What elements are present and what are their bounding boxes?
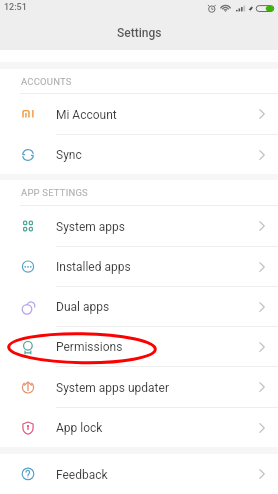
- staticText: Dual apps: [56, 300, 110, 314]
- staticText: Permissions: [56, 340, 123, 354]
- staticText: App lock: [56, 421, 103, 435]
- staticText: Sync: [56, 148, 82, 162]
- staticText: Installed apps: [56, 260, 131, 274]
- staticText: Feedback: [56, 468, 108, 482]
- staticText: 12:51: [4, 2, 27, 13]
- button[interactable]: Feedback: [0, 454, 278, 494]
- button[interactable]: Permissions: [0, 327, 278, 366]
- button[interactable]: Dual apps: [0, 287, 278, 326]
- button[interactable]: Mi Account: [0, 94, 278, 134]
- button[interactable]: Sync: [0, 135, 278, 174]
- staticText: Mi Account: [56, 108, 117, 122]
- staticText: APP SETTINGS: [21, 187, 88, 198]
- button[interactable]: System apps: [0, 206, 278, 246]
- staticText: System apps: [56, 220, 125, 234]
- staticText: Settings: [117, 26, 162, 40]
- staticText: System apps updater: [56, 381, 169, 395]
- button[interactable]: System apps updater: [0, 367, 278, 407]
- staticText: ACCOUNTS: [21, 76, 72, 87]
- button[interactable]: Installed apps: [0, 247, 278, 286]
- button[interactable]: App lock: [0, 408, 278, 447]
